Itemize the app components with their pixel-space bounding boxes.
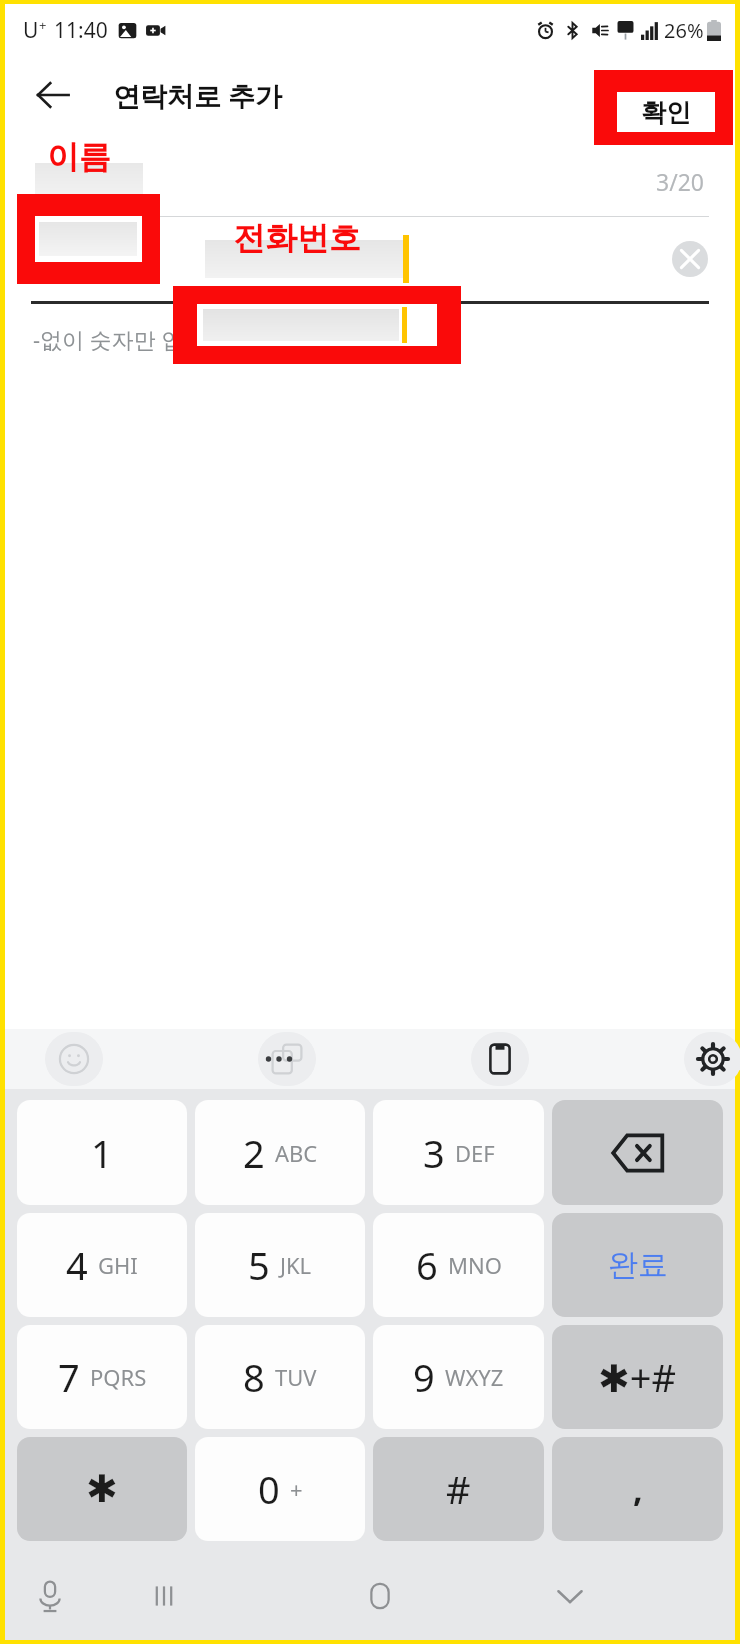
staticText: 6 xyxy=(416,1239,438,1291)
button[interactable]: 5 xyxy=(195,1213,365,1317)
staticText: 2 xyxy=(243,1127,265,1179)
staticText: , xyxy=(633,1466,643,1512)
button[interactable]: Clipboard xyxy=(471,1032,529,1086)
button[interactable]: 확인 xyxy=(643,72,713,119)
button[interactable]: 2 xyxy=(195,1100,365,1205)
button[interactable]: Voice input xyxy=(23,1569,77,1623)
button[interactable]: Back xyxy=(27,69,79,121)
button[interactable]: Home xyxy=(353,1569,407,1623)
staticText: DEF xyxy=(455,1138,495,1168)
staticText: GHI xyxy=(98,1250,138,1280)
button[interactable]: 6 xyxy=(373,1213,544,1317)
button[interactable]: ✱ xyxy=(17,1437,187,1541)
button[interactable]: Translate xyxy=(258,1032,316,1086)
button[interactable]: 9 xyxy=(373,1325,544,1429)
staticText: 26% xyxy=(664,17,704,44)
button[interactable]: ✱+# xyxy=(552,1325,723,1429)
button[interactable]: Emoji xyxy=(45,1032,103,1086)
staticText: U xyxy=(23,16,39,45)
staticText: 연락처로 추가 xyxy=(113,77,283,114)
button[interactable]: 3 xyxy=(373,1100,544,1205)
staticText: MNO xyxy=(448,1250,502,1280)
staticText: 이름 xyxy=(47,137,111,177)
staticText: 9 xyxy=(413,1351,435,1403)
staticText: ABC xyxy=(275,1138,318,1168)
staticText: +82 xyxy=(31,240,80,278)
staticText: WXYZ xyxy=(445,1362,504,1392)
button[interactable]: Hide keyboard xyxy=(543,1569,597,1623)
staticText: 확인 xyxy=(641,97,691,128)
staticText: 7 xyxy=(58,1351,80,1403)
staticText: 전화번호 xyxy=(233,218,361,258)
staticText: ✱+# xyxy=(598,1351,677,1403)
button[interactable]: 0 xyxy=(195,1437,365,1541)
button[interactable]: , xyxy=(552,1437,723,1541)
button[interactable]: 7 xyxy=(17,1325,187,1429)
staticText: TUV xyxy=(275,1362,317,1392)
button[interactable]: Keyboard settings xyxy=(684,1032,740,1086)
staticText: -없이 숫자만 입력해 주세요. xyxy=(33,324,306,354)
staticText: 완료 xyxy=(608,1246,668,1284)
staticText: 11:40 xyxy=(54,16,108,45)
button[interactable]: 8 xyxy=(195,1325,365,1429)
staticText: JKL xyxy=(280,1250,312,1280)
button[interactable]: Recents xyxy=(137,1569,191,1623)
staticText: + xyxy=(39,16,47,34)
staticText: ✱ xyxy=(86,1467,118,1511)
staticText: PQRS xyxy=(90,1362,147,1392)
staticText: 4 xyxy=(66,1239,88,1291)
staticText: 5 xyxy=(248,1239,270,1291)
button[interactable]: More options xyxy=(252,1032,306,1086)
staticText: 확인 xyxy=(653,80,703,111)
staticText: 1 xyxy=(91,1127,113,1179)
staticText: 3 xyxy=(423,1127,445,1179)
button[interactable]: # xyxy=(373,1437,544,1541)
staticText: 0 xyxy=(258,1463,280,1515)
button[interactable]: 완료 xyxy=(552,1213,723,1317)
button[interactable]: Clear text xyxy=(667,236,713,282)
button[interactable]: 1 xyxy=(17,1100,187,1205)
button[interactable]: 4 xyxy=(17,1213,187,1317)
button[interactable]: +82 xyxy=(31,240,118,278)
staticText: + xyxy=(290,1474,303,1504)
button[interactable]: Backspace xyxy=(552,1100,723,1205)
staticText: 8 xyxy=(243,1351,265,1403)
staticText: 3/20 xyxy=(656,166,705,197)
button[interactable]: 3/20 xyxy=(5,134,735,216)
staticText: # xyxy=(446,1463,471,1515)
